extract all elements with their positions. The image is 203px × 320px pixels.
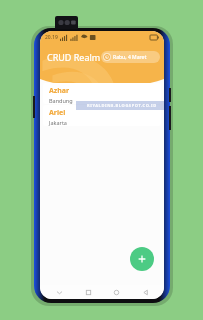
button[interactable]: Rabu, 4 Maret 2020 <box>101 51 160 63</box>
button[interactable]: Azhar <box>43 83 161 104</box>
button[interactable]: Hide keyboard <box>49 285 69 299</box>
staticText: Azhar <box>49 86 70 96</box>
button[interactable]: Recents <box>78 285 98 299</box>
staticText: Jakarta <box>49 119 67 126</box>
staticText: RIYALDIN8.BLOGSPOT.CO.ID <box>87 103 157 108</box>
staticText: 20.19 <box>45 34 58 41</box>
staticText: Bandung <box>49 97 73 104</box>
staticText: Ariel <box>49 108 66 118</box>
button[interactable]: Ariel <box>43 105 161 126</box>
button[interactable]: Back <box>135 285 155 299</box>
button[interactable]: Add <box>130 247 154 271</box>
staticText: CRUD Realm <box>47 51 101 63</box>
button[interactable]: Home <box>106 285 126 299</box>
staticText: Rabu, 4 Maret 2020 <box>113 54 158 61</box>
